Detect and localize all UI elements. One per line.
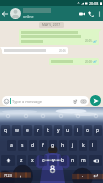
button[interactable]: j	[69, 140, 77, 151]
staticText: .	[82, 172, 84, 179]
staticText: z	[20, 157, 23, 164]
button[interactable]: Shift	[1, 155, 15, 166]
button[interactable]: k	[79, 140, 87, 151]
staticText: y	[57, 127, 60, 134]
staticText: 20:08	[85, 60, 92, 64]
button[interactable]: Backspace	[89, 155, 102, 166]
button[interactable]: m	[79, 155, 87, 166]
button[interactable]: n	[69, 155, 77, 166]
button[interactable]: Video call	[77, 6, 86, 21]
button[interactable]: i	[74, 125, 82, 136]
button[interactable]: Keyboard tool	[39, 112, 46, 119]
button[interactable]: q	[1, 125, 10, 136]
staticText: o	[86, 127, 90, 134]
button[interactable]: r	[34, 125, 42, 136]
button[interactable]: 20:05	[19, 29, 99, 45]
staticText: j	[72, 142, 74, 149]
button[interactable]: Call	[86, 6, 95, 21]
button[interactable]: Attach	[72, 98, 79, 105]
button[interactable]: Keyboard tool	[57, 112, 64, 119]
button[interactable]: ?123	[1, 170, 15, 181]
button[interactable]: ,	[17, 170, 25, 181]
button[interactable]: Back	[0, 6, 10, 21]
button[interactable]: Keyboard tool	[22, 112, 29, 119]
button[interactable]: z	[17, 155, 26, 166]
button[interactable]: Type a message	[2, 96, 89, 106]
button[interactable]: 20:08	[49, 58, 99, 65]
staticText: 20:08	[89, 1, 99, 6]
button[interactable]: Keyboard tool	[4, 112, 11, 119]
staticText: r	[37, 127, 40, 134]
button[interactable]: p	[94, 125, 102, 136]
staticText: x	[31, 157, 34, 164]
button[interactable]: c	[39, 155, 47, 166]
staticText: m	[81, 157, 86, 164]
button[interactable]: .	[79, 170, 87, 181]
staticText: f	[42, 142, 44, 149]
staticText: Type a message	[12, 99, 43, 104]
button[interactable]: Enter	[89, 170, 102, 181]
staticText: v	[52, 157, 55, 164]
button[interactable]: 20:06	[2, 47, 68, 54]
button[interactable]: u	[64, 125, 72, 136]
staticText: u	[66, 127, 70, 134]
button[interactable]: f	[39, 140, 47, 151]
button[interactable]: g	[49, 140, 57, 151]
staticText: g	[51, 142, 55, 149]
staticText: h	[61, 142, 65, 149]
staticText: e	[26, 127, 29, 134]
button[interactable]: l	[89, 140, 97, 151]
button[interactable]: Keyboard tool	[74, 112, 81, 119]
button[interactable]: d	[29, 140, 37, 151]
staticText: 20:05	[85, 39, 92, 43]
staticText: n	[71, 157, 75, 164]
button[interactable]: y	[54, 125, 62, 136]
button[interactable]: Camera	[80, 98, 87, 105]
staticText: w	[15, 127, 19, 134]
button[interactable]: More options	[95, 6, 103, 21]
staticText: p	[96, 127, 100, 134]
staticText: t	[47, 127, 49, 134]
button[interactable]: Profile photo	[10, 8, 21, 19]
button[interactable]: b	[59, 155, 67, 166]
staticText: s	[21, 142, 24, 149]
staticText: ?123	[4, 173, 12, 178]
staticText: a	[10, 142, 13, 149]
button[interactable]: x	[28, 155, 37, 166]
button[interactable]: t	[44, 125, 52, 136]
staticText: online	[23, 14, 34, 19]
staticText: MAY 5, 2017	[42, 23, 61, 27]
button[interactable]: e	[23, 125, 32, 136]
button[interactable]: Send	[90, 95, 101, 106]
staticText: d	[31, 142, 35, 149]
staticText: b	[61, 157, 65, 164]
button[interactable]: h	[59, 140, 67, 151]
button[interactable]: Keyboard tool	[92, 112, 99, 119]
staticText: l	[92, 142, 94, 149]
staticText: ,	[20, 172, 22, 179]
button[interactable]: s	[18, 140, 27, 151]
button[interactable]: a	[7, 140, 16, 151]
staticText: c	[42, 157, 45, 164]
staticText: 20:06	[59, 49, 66, 53]
staticText: k	[82, 142, 85, 149]
button[interactable]	[27, 170, 77, 181]
button[interactable]: v	[49, 155, 57, 166]
button[interactable]: w	[12, 125, 21, 136]
staticText: q	[4, 127, 8, 134]
button[interactable]: o	[84, 125, 92, 136]
staticText: i	[77, 127, 79, 134]
